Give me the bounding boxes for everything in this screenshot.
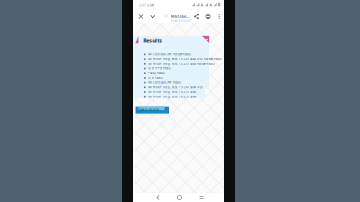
staticText: 1/1 — [163, 15, 168, 18]
button[interactable]: Back to Results — [135, 107, 169, 114]
button[interactable]: Back — [150, 193, 166, 202]
staticText: (L) B (PPS) RESULT — [148, 66, 171, 70]
staticText: 3:07 AM — [139, 2, 154, 8]
staticText: (A) CBUS SDIC/NY RESULT — [148, 81, 181, 84]
button[interactable]: Home — [171, 193, 187, 202]
staticText: (A) FVUGP (Reg. sess. 19-24) SDIA (VII) — [148, 85, 203, 89]
button[interactable]: Recent apps — [193, 193, 209, 202]
staticText: (L) B RESULT — [148, 76, 163, 79]
staticText: MBU4xL… — [171, 14, 190, 19]
button[interactable]: Print — [202, 10, 213, 23]
staticText: PSDIQ RESULT — [148, 71, 165, 75]
staticText: (A) FVUGP (Reg. sess. 14-23) SDIA REVIEW… — [148, 62, 215, 65]
staticText: (A) FVUGP (Reg. sess. 14-23) SDIA- — [148, 95, 197, 98]
staticText: Results — [143, 37, 162, 44]
staticText: (A) FVUGP (Reg. sess. 19-24) SDIA (VII) … — [148, 57, 222, 61]
button[interactable]: Share — [191, 10, 202, 23]
button[interactable]: More options — [215, 10, 224, 23]
button[interactable]: Close — [135, 10, 147, 23]
staticText: (A) FVUGP (Reg. sess. 14-23) SDIA — [148, 90, 196, 93]
button[interactable]: View mode — [147, 10, 159, 23]
staticText: Back to Results — [139, 108, 159, 111]
staticText: Read-only pdf — [170, 19, 190, 22]
staticText: (A) CBUS SDIC/NY REVIEW RESULT — [148, 52, 191, 56]
